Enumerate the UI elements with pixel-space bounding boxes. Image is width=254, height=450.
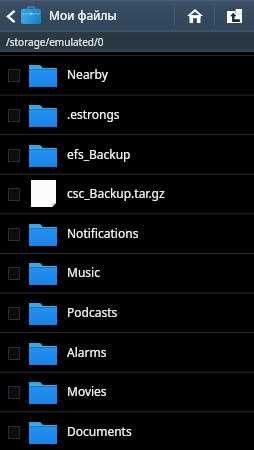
button[interactable]: Back xyxy=(0,0,21,32)
button[interactable]: Alarms xyxy=(0,333,254,373)
staticText: Alarms xyxy=(67,344,107,360)
button[interactable]: csc_Backup.tar.gz xyxy=(0,174,254,214)
button[interactable]: Up one level xyxy=(215,0,254,32)
button[interactable]: Movies xyxy=(0,372,254,412)
button[interactable]: Music xyxy=(0,253,254,293)
staticText: Podcasts xyxy=(67,304,118,320)
staticText: Мои файлы xyxy=(49,7,117,23)
staticText: efs_Backup xyxy=(67,146,131,162)
staticText: Music xyxy=(67,264,100,280)
button[interactable]: Notifications xyxy=(0,214,254,254)
button[interactable]: Home xyxy=(176,0,214,32)
staticText: csc_Backup.tar.gz xyxy=(67,185,165,201)
button[interactable]: Nearby xyxy=(0,55,254,95)
staticText: .estrongs xyxy=(67,106,120,122)
staticText: Movies xyxy=(67,383,107,399)
button[interactable]: Documents xyxy=(0,412,254,450)
staticText: Nearby xyxy=(67,66,108,82)
button[interactable]: efs_Backup xyxy=(0,135,254,175)
staticText: Documents xyxy=(67,423,132,439)
staticText: Notifications xyxy=(67,225,139,241)
button[interactable]: Podcasts xyxy=(0,293,254,333)
button[interactable]: .estrongs xyxy=(0,95,254,135)
staticText: /storage/emulated/0 xyxy=(6,35,104,49)
